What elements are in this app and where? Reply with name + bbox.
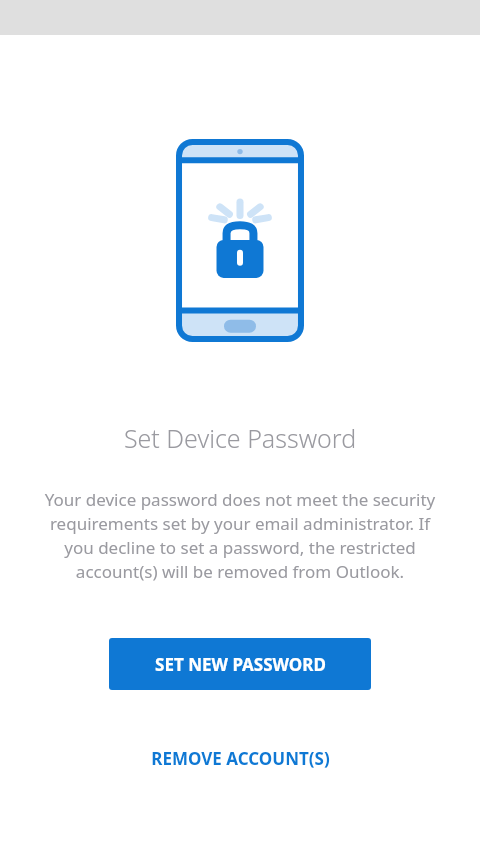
button[interactable]: SET NEW PASSWORD — [109, 638, 371, 690]
staticText: Your device password does not meet the s… — [34, 488, 446, 583]
staticText: REMOVE ACCOUNT(S) — [151, 747, 330, 770]
staticText: SET NEW PASSWORD — [155, 653, 326, 676]
staticText: Set Device Password — [0, 421, 480, 455]
button[interactable]: REMOVE ACCOUNT(S) — [109, 734, 371, 782]
